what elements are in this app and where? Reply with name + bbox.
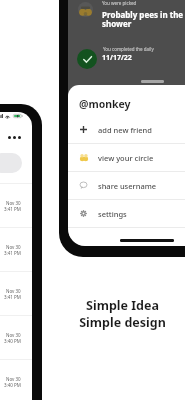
staticText: Nov 30 — [6, 200, 21, 206]
staticText: Simple design — [79, 314, 166, 331]
staticText: share username — [98, 181, 157, 191]
staticText: 3:41 PM — [4, 294, 21, 300]
other: Share username — [78, 180, 89, 191]
other: Settings — [78, 208, 89, 219]
other: View your circle — [78, 152, 89, 163]
staticText: Nov 30 — [6, 376, 21, 382]
staticText: Probably pees in the shower — [102, 9, 185, 30]
staticText: Nov 30 — [6, 244, 21, 250]
staticText: settings — [98, 209, 127, 219]
staticText: 3:40 PM — [4, 338, 21, 344]
staticText: 3:40 PM — [4, 382, 21, 388]
button[interactable]: Nov 30 — [0, 184, 32, 227]
button[interactable]: Settings — [68, 200, 185, 227]
button[interactable]: Nov 30 — [0, 360, 32, 400]
button[interactable]: Add new friend — [68, 116, 185, 143]
staticText: 11/17/22 — [102, 53, 132, 63]
staticText: You completed the daily — [103, 46, 154, 52]
button[interactable]: Nov 30 — [0, 272, 32, 315]
button[interactable]: Share username — [68, 172, 185, 199]
staticText: view your circle — [98, 153, 154, 163]
button[interactable]: Nov 30 — [0, 316, 32, 359]
other: Add new friend — [78, 124, 89, 135]
staticText: Nov 30 — [6, 288, 21, 294]
button[interactable]: Nov 30 — [0, 228, 32, 271]
button[interactable]: View your circle — [68, 144, 185, 171]
staticText: Nov 30 — [6, 332, 21, 338]
staticText: 3:41 PM — [4, 206, 21, 212]
staticText: You were picked — [102, 0, 137, 6]
staticText: 3:41 PM — [4, 250, 21, 256]
staticText: @monkey — [79, 97, 131, 111]
staticText: add new friend — [98, 125, 152, 135]
staticText: Simple Idea — [86, 297, 159, 314]
